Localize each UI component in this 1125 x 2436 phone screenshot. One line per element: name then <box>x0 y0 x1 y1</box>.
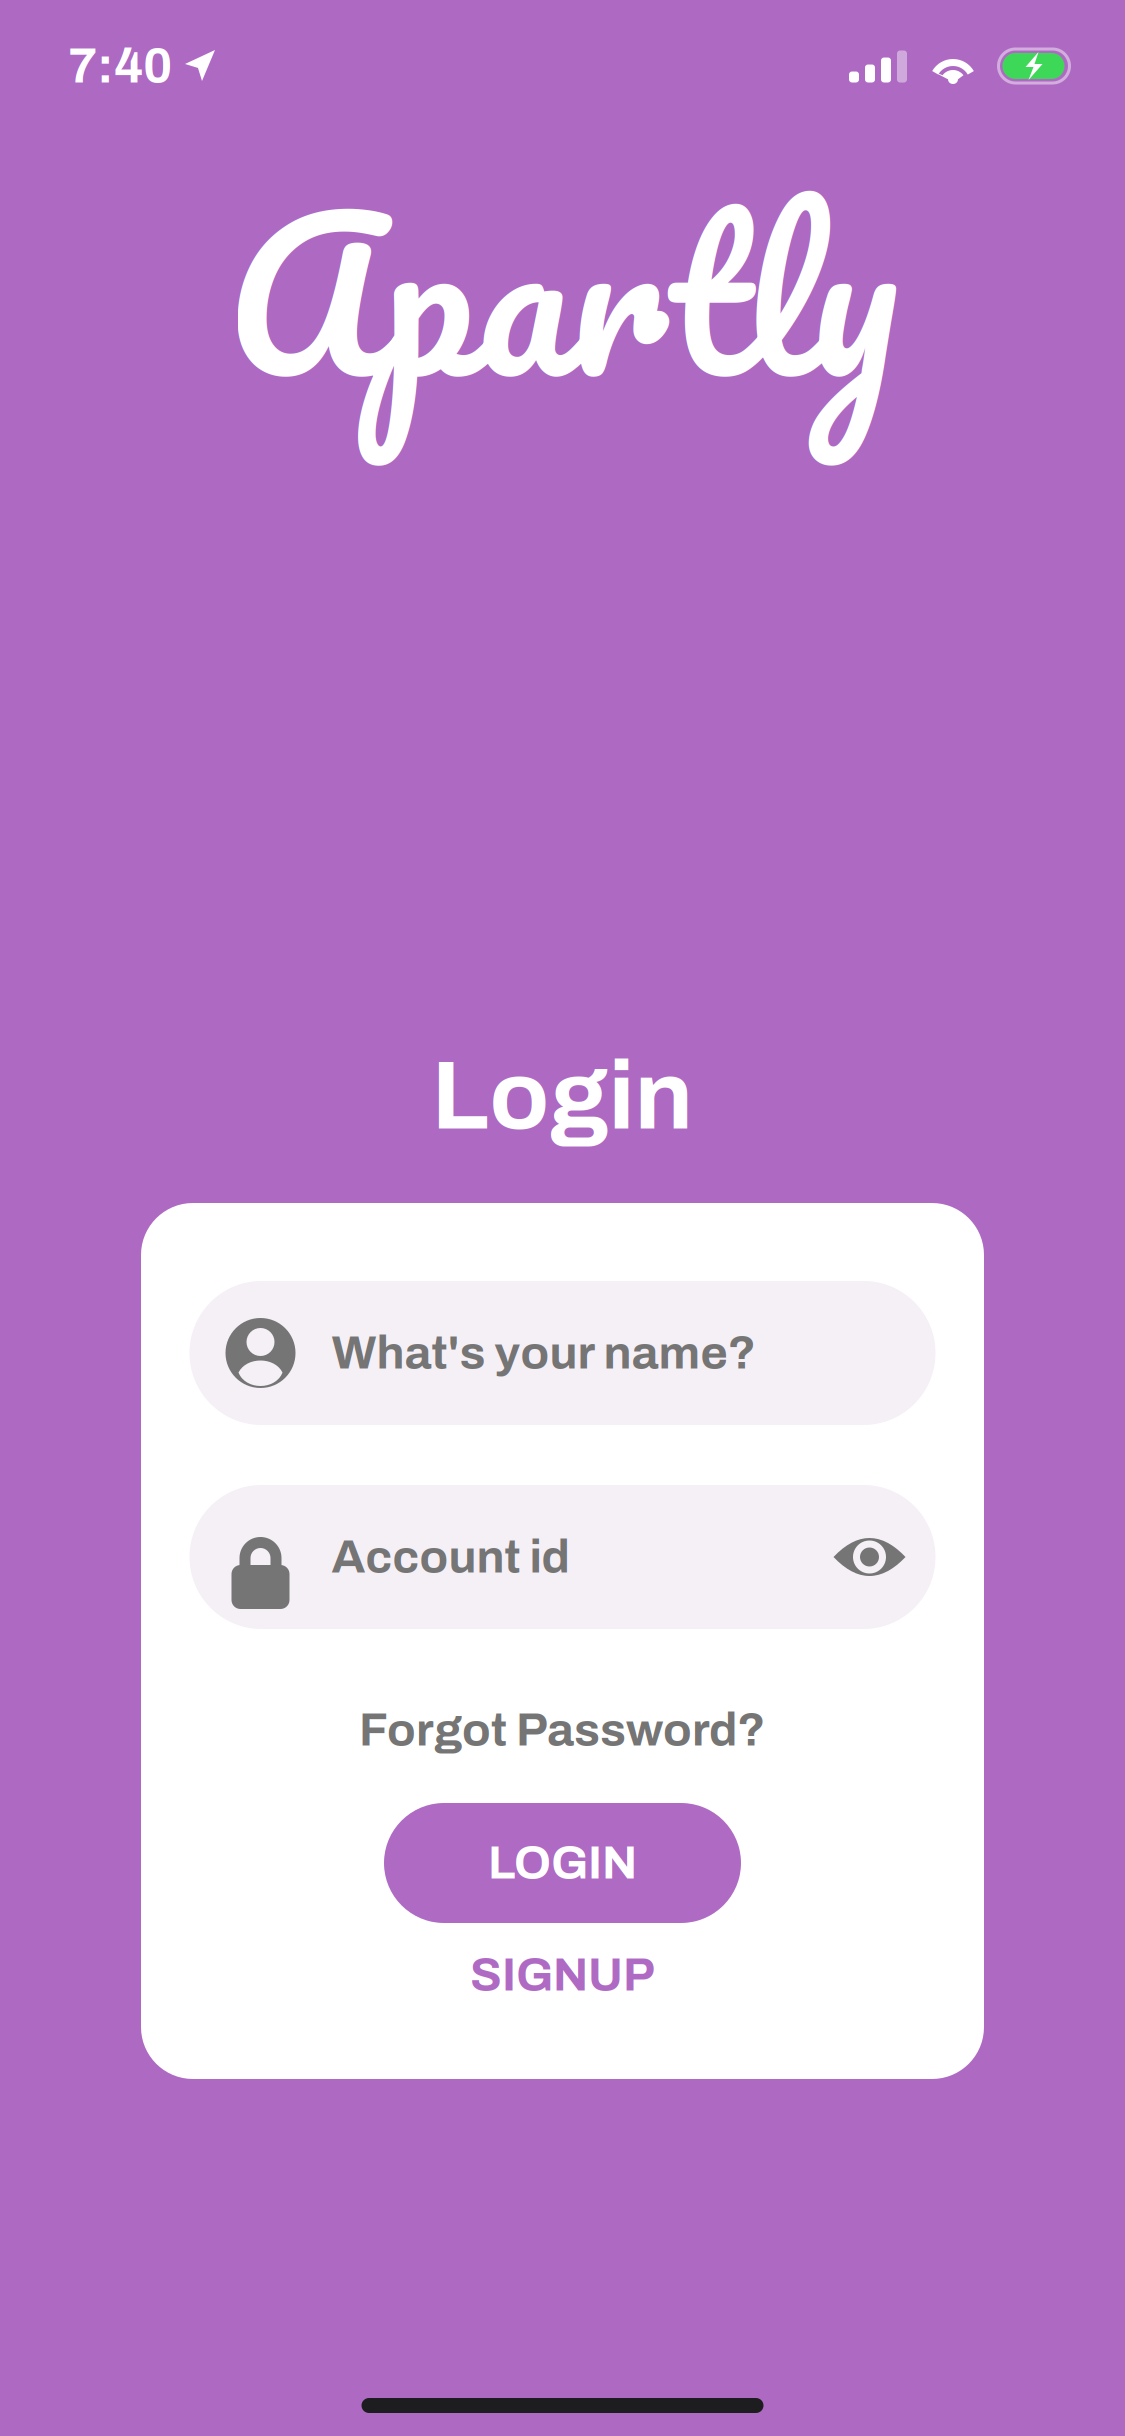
button[interactable]: Forgot Password? <box>333 1689 792 1771</box>
button[interactable]: LOGIN <box>384 1803 741 1923</box>
staticText: Forgot Password? <box>359 1705 766 1755</box>
staticText: SIGNUP <box>470 1950 655 2000</box>
button[interactable]: Account id <box>189 1485 935 1629</box>
staticText: LOGIN <box>488 1838 637 1888</box>
button[interactable]: SIGNUP <box>444 1923 681 2027</box>
staticText: Login <box>431 1043 693 1149</box>
staticText: Apartly <box>226 119 898 465</box>
staticText: What's your name? <box>331 1328 756 1378</box>
button[interactable]: What's your name? <box>189 1281 935 1425</box>
staticText: 7:40 <box>68 39 172 93</box>
staticText: Account id <box>331 1532 569 1582</box>
